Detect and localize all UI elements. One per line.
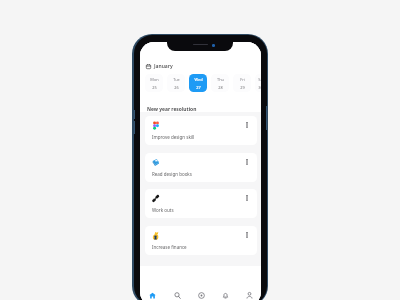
button[interactable]: Increase finance bbox=[145, 226, 257, 255]
staticText: Tue bbox=[173, 77, 180, 82]
staticText: 29 bbox=[240, 85, 245, 90]
staticText: Fri bbox=[240, 77, 245, 82]
button[interactable]: Thu bbox=[211, 74, 229, 92]
staticText: Improve design skill bbox=[152, 134, 195, 140]
staticText: Mon bbox=[150, 77, 159, 82]
staticText: 27 bbox=[196, 85, 201, 90]
staticText: Thu bbox=[217, 77, 224, 82]
button[interactable]: Tue bbox=[167, 74, 185, 92]
button[interactable]: Work outs bbox=[145, 189, 257, 218]
staticText: Sa bbox=[258, 77, 261, 82]
button[interactable]: Wed bbox=[189, 74, 207, 92]
staticText: Wed bbox=[194, 77, 203, 82]
staticText: New year resolution bbox=[147, 106, 197, 113]
button[interactable]: Explore bbox=[189, 289, 213, 300]
button[interactable]: More options bbox=[246, 232, 248, 238]
button[interactable]: Read design books bbox=[145, 153, 257, 182]
staticText: 25 bbox=[152, 85, 157, 90]
button[interactable]: Home bbox=[140, 289, 165, 300]
staticText: Work outs bbox=[152, 207, 174, 213]
staticText: 28 bbox=[218, 85, 223, 90]
button[interactable]: Calendar bbox=[146, 64, 151, 69]
button[interactable]: Fri bbox=[233, 74, 251, 92]
button[interactable]: More options bbox=[246, 159, 248, 165]
button[interactable]: Search bbox=[165, 289, 189, 300]
staticText: Read design books bbox=[152, 171, 192, 177]
button[interactable]: More options bbox=[246, 195, 248, 201]
staticText: 26 bbox=[174, 85, 179, 90]
staticText: January bbox=[154, 63, 173, 70]
staticText: 30 bbox=[258, 85, 261, 90]
button[interactable]: Improve design skill bbox=[145, 116, 257, 145]
button[interactable]: Profile bbox=[237, 289, 261, 300]
button[interactable]: More options bbox=[246, 122, 248, 128]
button[interactable]: Notifications bbox=[213, 289, 237, 300]
staticText: Increase finance bbox=[152, 244, 187, 250]
button[interactable]: Sa bbox=[255, 74, 261, 92]
button[interactable]: Mon bbox=[145, 74, 163, 92]
